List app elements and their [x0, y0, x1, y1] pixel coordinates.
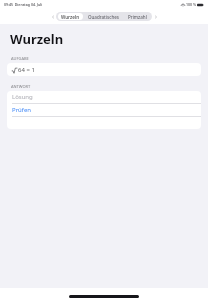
staticText: Wurzeln: [61, 14, 80, 19]
button[interactable]: Quadratisches: [85, 13, 123, 20]
staticText: 100 %: [186, 2, 196, 7]
staticText: Primzahl: [128, 14, 147, 19]
button[interactable]: Next: [152, 13, 159, 20]
staticText: ANTWORT: [11, 84, 31, 89]
staticText: Quadratisches: [88, 14, 120, 19]
staticText: AUFGABE: [11, 56, 29, 61]
button[interactable]: Primzahl: [125, 13, 150, 20]
button[interactable]: Wurzeln: [58, 13, 83, 20]
staticText: 64 = 1: [18, 66, 35, 74]
button[interactable]: Previous: [49, 13, 56, 20]
staticText: Wurzeln: [10, 30, 64, 48]
staticText: Lösung: [12, 93, 33, 101]
button[interactable]: 64 = 1: [7, 63, 201, 76]
staticText: Prüfen: [12, 106, 31, 114]
button[interactable]: Lösung: [7, 91, 201, 103]
staticText: 09:45 Dienstag 04. Juli: [4, 2, 43, 7]
button[interactable]: Prüfen: [7, 104, 201, 116]
